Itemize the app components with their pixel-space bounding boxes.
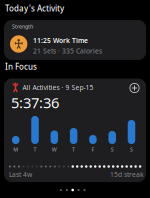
staticText: M xyxy=(13,146,18,153)
staticText: All Activities · 9 Sep-15 xyxy=(22,83,93,92)
staticText: Today's Activity xyxy=(5,3,64,14)
staticText: 11:25 Work Time xyxy=(33,36,88,45)
staticText: 15d streak xyxy=(110,170,144,179)
staticText: 21 Sets · 335 Calories xyxy=(33,47,102,55)
staticText: In Focus xyxy=(5,61,37,72)
staticText: T xyxy=(72,146,75,153)
staticText: S xyxy=(111,146,114,153)
staticText: Strength xyxy=(12,23,33,30)
button[interactable]: Add Activity xyxy=(126,80,142,96)
staticText: 5:37:36 xyxy=(11,93,59,112)
staticText: W xyxy=(52,146,57,153)
button[interactable]: Strength xyxy=(4,20,146,60)
staticText: Last 4w xyxy=(9,170,32,179)
staticText: S xyxy=(130,146,133,153)
staticText: F xyxy=(91,146,94,153)
staticText: T xyxy=(33,146,36,153)
